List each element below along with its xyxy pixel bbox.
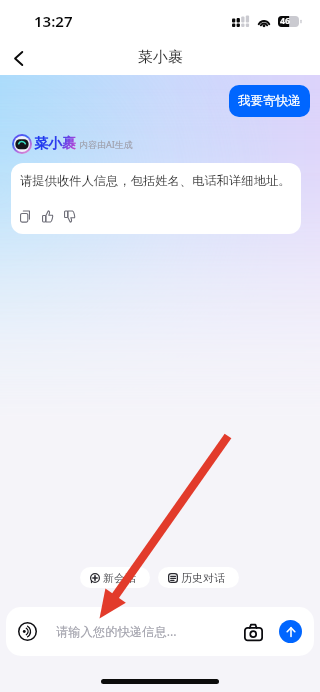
button[interactable]: Back <box>4 44 32 72</box>
button[interactable]: Camera <box>243 622 263 642</box>
button[interactable]: Send <box>279 620 302 643</box>
staticText: 新会话 <box>103 571 136 585</box>
button[interactable]: Dislike <box>64 210 75 223</box>
button[interactable]: 我要寄快递 <box>229 85 310 117</box>
staticText: 请输入您的快递信息... <box>56 623 243 640</box>
staticText: 菜小裹 <box>34 135 76 153</box>
staticText: 我要寄快递 <box>238 93 301 109</box>
button[interactable]: 历史对话 <box>158 567 239 588</box>
staticText: 菜小裹 <box>138 48 183 67</box>
staticText: 46 <box>280 15 291 27</box>
staticText: 历史对话 <box>181 571 225 585</box>
staticText: 请提供收件人信息，包括姓名、电话和详细地址。 <box>20 173 291 188</box>
staticText: 13:27 <box>34 11 73 31</box>
staticText: 内容由AI生成 <box>79 138 133 150</box>
button[interactable]: Like <box>42 210 53 223</box>
button[interactable]: 新会话 <box>80 567 150 588</box>
button[interactable]: Copy <box>20 210 31 223</box>
button[interactable]: Voice input <box>18 622 37 641</box>
